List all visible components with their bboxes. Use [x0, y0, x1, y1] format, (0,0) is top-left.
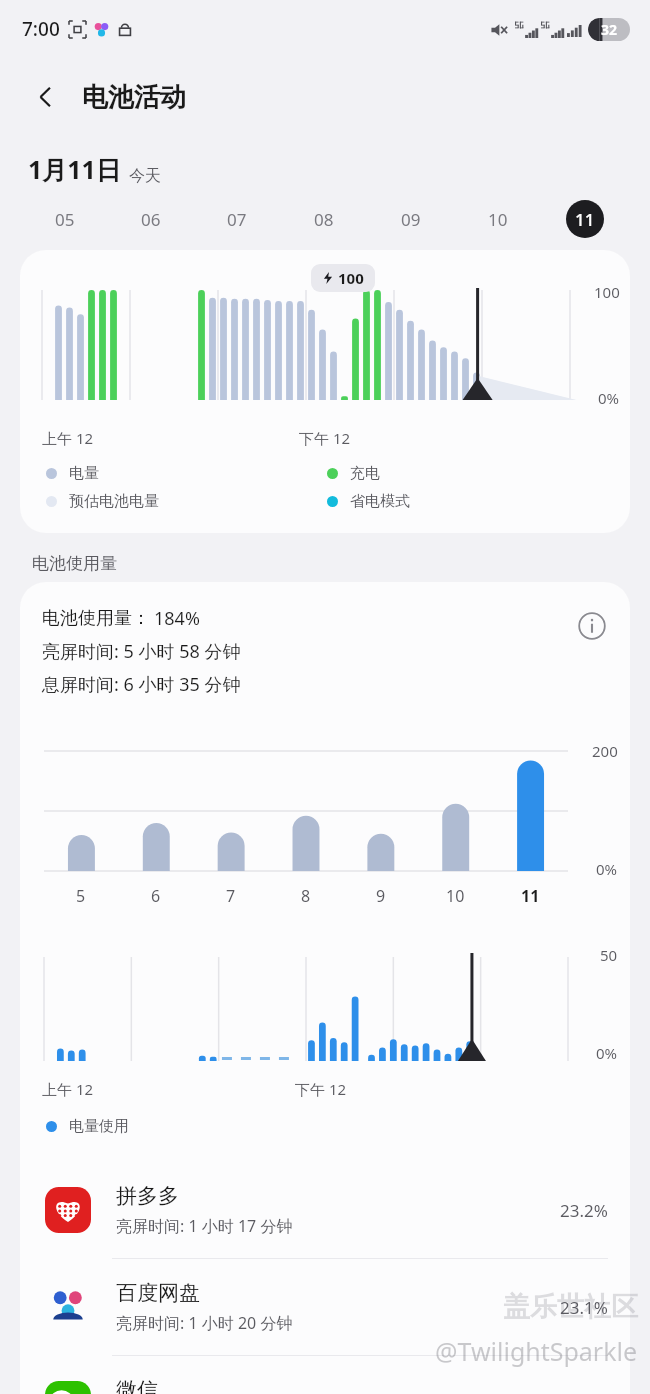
staticText: 200 [592, 741, 618, 761]
staticText: 亮屏时间: 1 小时 20 分钟 [116, 1312, 293, 1334]
staticText: 亮屏时间: 1 小时 17 分钟 [116, 1215, 293, 1237]
staticText: 184% [154, 606, 200, 631]
staticText: 11 [521, 885, 540, 907]
button[interactable]: 06 [108, 196, 194, 242]
button[interactable]: 100 [20, 250, 630, 533]
staticText: 拼多多 [116, 1183, 179, 1209]
staticText: 09 [401, 208, 421, 231]
staticText: 07 [227, 208, 247, 231]
staticText: 32 [601, 20, 618, 39]
button[interactable]: 拼多多 [20, 1162, 630, 1258]
button[interactable]: 11 [541, 196, 628, 242]
staticText: 7 [226, 885, 236, 907]
staticText: 上午 12 [42, 428, 94, 448]
staticText: @TwilightSparkle [435, 1334, 638, 1368]
staticText: 盖乐世社区 [503, 1290, 638, 1324]
staticText: 充电 [350, 464, 380, 483]
staticText: 0% [596, 859, 618, 879]
staticText: 10 [488, 208, 508, 231]
button[interactable]: 10 [454, 196, 541, 242]
staticText: 百度网盘 [116, 1280, 200, 1306]
staticText: 08 [314, 208, 334, 231]
staticText: 电量 [69, 464, 99, 483]
staticText: 电池活动 [82, 81, 186, 114]
staticText: 23.1% [560, 1296, 608, 1319]
button[interactable]: 09 [367, 196, 454, 242]
staticText: 微信 [116, 1377, 158, 1394]
staticText: 电池使用量 [32, 553, 117, 574]
button[interactable]: 微信 [20, 1356, 630, 1394]
staticText: 今天 [129, 166, 161, 186]
staticText: 0% [598, 388, 620, 408]
button[interactable]: 08 [280, 196, 367, 242]
staticText: 电量使用 [69, 1117, 129, 1136]
staticText: 0% [596, 1043, 618, 1063]
staticText: 11 [575, 208, 595, 231]
staticText: 5 [76, 885, 86, 907]
staticText: 9 [376, 885, 386, 907]
staticText: 10 [446, 885, 465, 907]
staticText: 亮屏时间: 5 小时 58 分钟 [42, 639, 241, 664]
button[interactable]: 07 [194, 196, 280, 242]
staticText: 8 [301, 885, 311, 907]
staticText: 23.2% [560, 1199, 608, 1222]
staticText: 下午 12 [299, 428, 351, 448]
staticText: 100 [338, 268, 364, 288]
button[interactable]: 05 [22, 196, 108, 242]
staticText: 息屏时间: 6 小时 35 分钟 [42, 672, 241, 697]
staticText: 1月11日 [28, 152, 121, 186]
button[interactable]: 返回 [24, 75, 68, 119]
staticText: 06 [141, 208, 161, 231]
staticText: 电池使用量： [42, 607, 150, 630]
staticText: 05 [55, 208, 75, 231]
staticText: 6 [151, 885, 161, 907]
staticText: 7:00 [22, 16, 60, 42]
staticText: 50 [600, 945, 618, 965]
staticText: 上午 12 [42, 1079, 94, 1099]
button[interactable]: 信息 [572, 606, 612, 646]
staticText: 预估电池电量 [69, 492, 159, 511]
staticText: 下午 12 [295, 1079, 347, 1099]
button[interactable]: 百度网盘 [20, 1259, 630, 1355]
staticText: 省电模式 [350, 492, 410, 511]
staticText: 100 [594, 282, 620, 302]
